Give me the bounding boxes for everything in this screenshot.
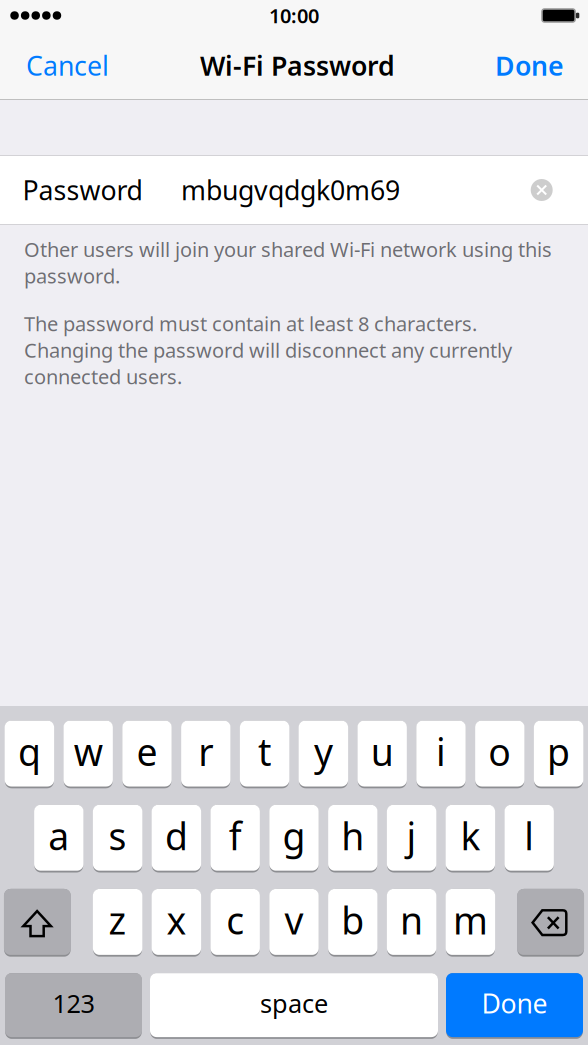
button[interactable]: 123 [5, 973, 142, 1039]
staticText: space [260, 986, 328, 1020]
staticText: d [165, 811, 188, 860]
staticText: x [166, 895, 186, 945]
staticText: Wi-Fi Password [200, 48, 395, 83]
staticText: n [400, 895, 423, 945]
staticText: a [48, 811, 69, 860]
button[interactable]: p [534, 720, 583, 788]
staticText: v [284, 895, 303, 945]
button[interactable]: Done [446, 973, 583, 1039]
button[interactable]: e [122, 720, 172, 788]
staticText: r [198, 727, 213, 776]
staticText: b [341, 895, 364, 945]
staticText: o [488, 727, 511, 776]
staticText: y [314, 727, 333, 776]
button[interactable]: j [387, 805, 436, 872]
staticText: i [436, 727, 446, 776]
button[interactable]: v [269, 889, 319, 957]
staticText: Done [495, 48, 564, 83]
staticText: q [18, 727, 41, 776]
staticText: f [229, 811, 242, 860]
staticText: z [109, 895, 127, 945]
button[interactable]: b [328, 889, 377, 957]
staticText: h [341, 811, 364, 860]
staticText: 123 [52, 986, 94, 1020]
button[interactable]: n [387, 889, 436, 957]
button[interactable]: y [299, 720, 348, 788]
button[interactable]: k [446, 805, 495, 872]
button[interactable]: Clear text [531, 179, 553, 201]
staticText: s [109, 811, 127, 860]
button[interactable]: Delete [517, 889, 584, 957]
button[interactable]: i [416, 720, 466, 788]
staticText: j [407, 811, 417, 860]
staticText: The password must contain at least 8 cha… [24, 310, 512, 390]
button[interactable]: q [5, 720, 54, 788]
button[interactable]: h [328, 805, 377, 872]
staticText: k [460, 811, 480, 860]
button[interactable]: Cancel [14, 31, 121, 99]
button[interactable]: Shift [4, 889, 71, 957]
staticText: g [282, 811, 305, 860]
button[interactable]: g [269, 805, 319, 872]
button[interactable]: f [210, 805, 260, 872]
staticText: p [547, 727, 570, 776]
button[interactable]: z [93, 889, 142, 957]
button[interactable]: u [357, 720, 407, 788]
staticText: mbugvqdgk0m69 [181, 172, 400, 208]
staticText: e [136, 727, 157, 776]
staticText: Done [481, 985, 547, 1021]
staticText: t [258, 727, 271, 776]
staticText: 10:00 [269, 2, 319, 29]
button[interactable]: a [34, 805, 83, 872]
staticText: Other users will join your shared Wi-Fi … [24, 236, 552, 289]
button[interactable]: x [152, 889, 201, 957]
staticText: Cancel [26, 48, 109, 83]
staticText: w [74, 727, 103, 776]
button[interactable]: r [181, 720, 230, 788]
button[interactable]: o [475, 720, 524, 788]
button[interactable]: l [504, 805, 554, 872]
staticText: u [371, 727, 394, 776]
button[interactable]: w [63, 720, 113, 788]
button[interactable]: Done [483, 31, 576, 99]
button[interactable]: m [446, 889, 495, 957]
button[interactable]: c [210, 889, 260, 957]
staticText: l [524, 811, 534, 860]
staticText: m [453, 895, 488, 945]
button[interactable]: t [240, 720, 289, 788]
button[interactable]: s [93, 805, 142, 872]
staticText: c [226, 895, 244, 945]
button[interactable]: d [152, 805, 201, 872]
button[interactable]: space [150, 973, 438, 1039]
staticText: Password [22, 172, 142, 208]
